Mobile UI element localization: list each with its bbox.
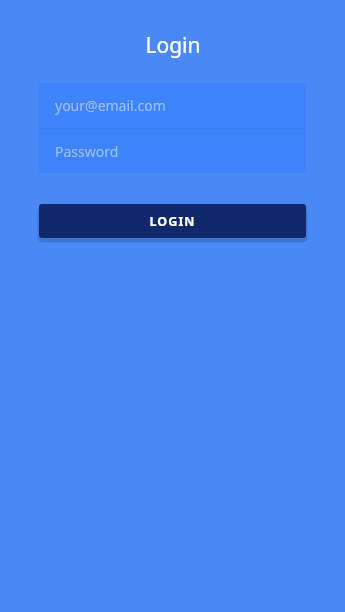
button[interactable]: Login <box>39 204 306 238</box>
staticText: Password <box>55 142 119 161</box>
staticText: Login <box>145 31 201 60</box>
staticText: LOGIN <box>149 213 196 230</box>
button[interactable]: Password <box>39 129 306 173</box>
button[interactable]: your@email.com <box>39 83 306 128</box>
staticText: your@email.com <box>55 96 166 115</box>
